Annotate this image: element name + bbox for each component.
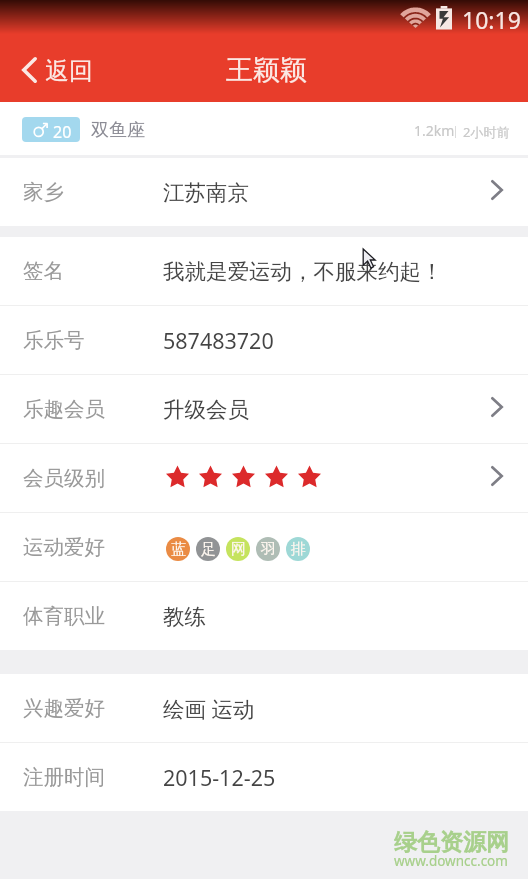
staticText: 蓝	[171, 540, 186, 559]
staticText: 乐趣会员	[23, 396, 105, 422]
staticText: 1.2km	[414, 121, 455, 140]
staticText: 绘画 运动	[163, 694, 255, 723]
staticText: 签名	[23, 258, 64, 284]
button[interactable]: 家乡	[0, 158, 528, 226]
staticText: 2小时前	[463, 123, 510, 141]
staticText: www.downcc.com	[394, 852, 508, 870]
button[interactable]: Gender and age	[22, 117, 80, 142]
staticText: 运动爱好	[23, 534, 105, 560]
button[interactable]: 返回	[10, 43, 105, 93]
button[interactable]: 乐趣会员	[0, 375, 528, 443]
staticText: 王颖颖	[226, 53, 307, 87]
staticText: 我就是爱运动，不服来约起！	[163, 258, 443, 285]
staticText: 排	[291, 540, 306, 559]
staticText: 2015-12-25	[163, 763, 276, 792]
staticText: 乐乐号	[23, 327, 85, 353]
staticText: 家乡	[23, 179, 64, 205]
staticText: 兴趣爱好	[23, 695, 105, 721]
staticText: 江苏南京	[163, 179, 249, 206]
staticText: 587483720	[163, 326, 274, 355]
staticText: 10:19	[462, 4, 521, 35]
staticText: 会员级别	[23, 465, 105, 491]
staticText: 绿色资源网	[394, 828, 509, 857]
staticText: 返回	[45, 56, 93, 86]
staticText: 升级会员	[163, 396, 249, 423]
staticText: 足	[201, 540, 216, 559]
staticText: 20	[53, 121, 72, 142]
staticText: 教练	[163, 603, 206, 630]
staticText: 体育职业	[23, 603, 105, 629]
button[interactable]: 会员级别	[0, 444, 528, 512]
staticText: 羽	[261, 540, 276, 559]
staticText: 网	[231, 540, 246, 559]
staticText: 注册时间	[23, 764, 105, 790]
staticText: 双鱼座	[91, 119, 145, 142]
